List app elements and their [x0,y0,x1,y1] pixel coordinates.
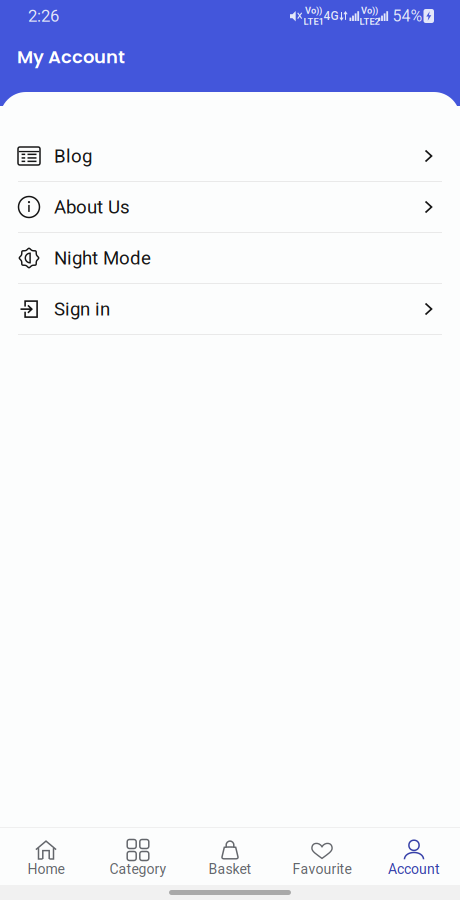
button[interactable]: Night Mode [0,233,460,284]
staticText: About Us [54,196,130,218]
staticText: Sign in [54,298,110,320]
staticText: Home [27,861,64,877]
button[interactable]: Category [92,840,184,877]
staticText: Night Mode [54,247,151,269]
staticText: 4G [323,9,338,23]
staticText: Account [388,861,440,877]
button[interactable]: Home [0,840,92,877]
staticText: Blog [54,145,92,167]
staticText: 2:26 [28,6,59,26]
staticText: Basket [208,861,251,877]
staticText: Vo)) [305,5,322,16]
staticText: Category [109,861,166,877]
button[interactable]: Favourite [276,840,368,877]
staticText: Vo)) [361,5,378,16]
button[interactable]: About Us [0,182,460,233]
staticText: 54% [392,7,422,25]
staticText: LTE1 [303,16,323,27]
button[interactable]: Sign in [0,284,460,335]
staticText: My Account [17,44,125,70]
staticText: LTE2 [359,16,379,27]
button[interactable]: Account [368,840,460,877]
staticText: Favourite [292,861,351,877]
button[interactable]: Blog [0,131,460,182]
button[interactable]: Basket [184,840,276,877]
